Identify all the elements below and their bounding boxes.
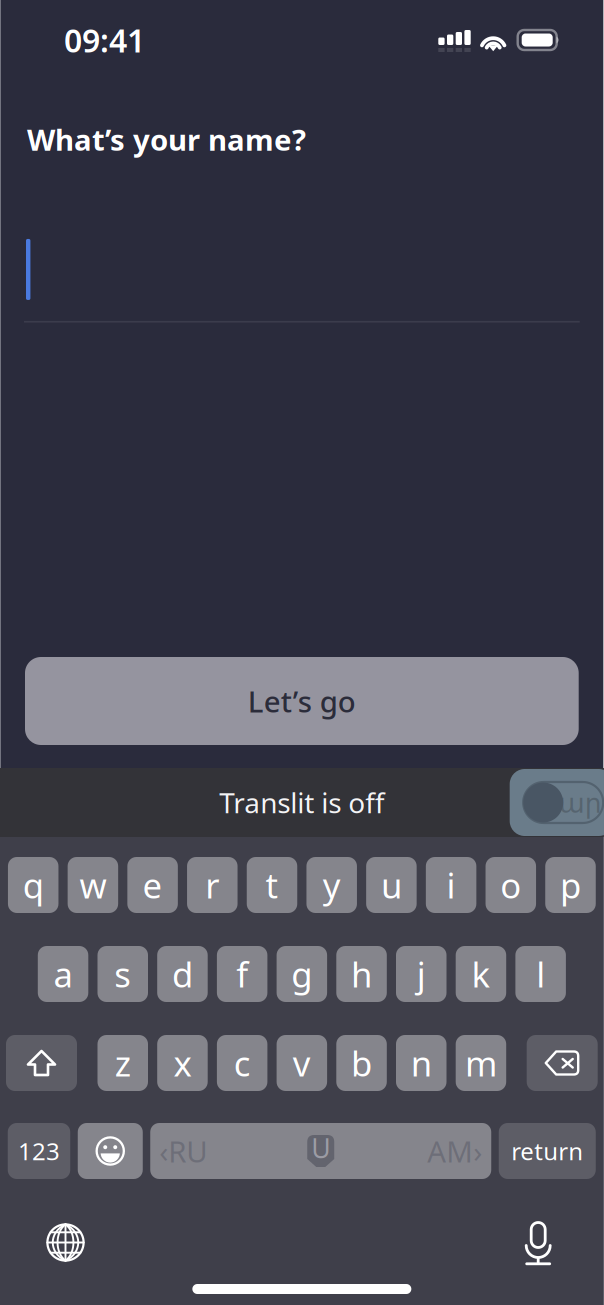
button[interactable]: j bbox=[396, 946, 446, 1002]
staticText: e bbox=[143, 862, 163, 908]
button[interactable]: r bbox=[187, 857, 238, 913]
staticText: l bbox=[536, 951, 545, 997]
button[interactable]: Let’s go bbox=[25, 657, 579, 745]
staticText: o bbox=[500, 862, 521, 908]
button[interactable]: l bbox=[515, 946, 566, 1002]
button[interactable]: a bbox=[38, 946, 88, 1002]
button[interactable]: Shift bbox=[6, 1035, 77, 1091]
button[interactable]: Emoji bbox=[78, 1123, 143, 1179]
button[interactable]: s bbox=[97, 946, 148, 1002]
button[interactable]: 123 bbox=[8, 1123, 70, 1179]
button[interactable]: y bbox=[306, 857, 357, 913]
staticText: return bbox=[511, 1135, 583, 1167]
staticText: AM› bbox=[427, 1131, 482, 1170]
button[interactable]: p bbox=[545, 857, 596, 913]
button[interactable]: Space bbox=[150, 1123, 491, 1179]
staticText: t bbox=[265, 862, 278, 908]
staticText: n bbox=[411, 1040, 432, 1086]
button[interactable]: b bbox=[336, 1035, 387, 1091]
staticText: g bbox=[291, 951, 312, 997]
button[interactable]: x bbox=[157, 1035, 208, 1091]
staticText: ար bbox=[559, 788, 602, 819]
staticText: m bbox=[465, 1040, 497, 1086]
button[interactable]: q bbox=[8, 857, 58, 913]
staticText: Translit is off bbox=[219, 784, 384, 821]
button[interactable]: Dictation bbox=[512, 1219, 565, 1265]
button[interactable]: Next keyboard bbox=[36, 1213, 95, 1272]
button[interactable]: return bbox=[499, 1123, 596, 1179]
button[interactable]: Translit toggle bbox=[500, 769, 604, 836]
staticText: i bbox=[447, 862, 456, 908]
staticText: j bbox=[417, 951, 426, 997]
button[interactable]: k bbox=[456, 946, 506, 1002]
staticText: x bbox=[173, 1040, 191, 1086]
staticText: s bbox=[114, 951, 131, 997]
staticText: What’s your name? bbox=[27, 120, 306, 159]
staticText: w bbox=[79, 862, 106, 908]
staticText: f bbox=[236, 951, 248, 997]
button[interactable]: e bbox=[127, 857, 178, 913]
staticText: Let’s go bbox=[248, 681, 356, 720]
button[interactable]: n bbox=[396, 1035, 446, 1091]
staticText: a bbox=[54, 951, 73, 997]
staticText: v bbox=[293, 1040, 311, 1086]
staticText: k bbox=[471, 951, 490, 997]
button[interactable]: f bbox=[217, 946, 267, 1002]
button[interactable]: w bbox=[68, 857, 118, 913]
staticText: d bbox=[172, 951, 193, 997]
staticText: 123 bbox=[18, 1135, 60, 1167]
staticText: U bbox=[311, 1130, 330, 1166]
staticText: b bbox=[351, 1040, 372, 1086]
button[interactable]: d bbox=[157, 946, 208, 1002]
staticText: p bbox=[560, 862, 581, 908]
staticText: c bbox=[234, 1040, 251, 1086]
button[interactable]: h bbox=[336, 946, 387, 1002]
staticText: y bbox=[323, 862, 341, 908]
button[interactable]: t bbox=[247, 857, 297, 913]
button[interactable]: z bbox=[97, 1035, 148, 1091]
button[interactable]: Delete bbox=[527, 1035, 598, 1091]
button[interactable]: c bbox=[217, 1035, 267, 1091]
staticText: r bbox=[205, 862, 219, 908]
button[interactable]: v bbox=[277, 1035, 327, 1091]
staticText: q bbox=[23, 862, 44, 908]
staticText: h bbox=[351, 951, 372, 997]
staticText: ‹RU bbox=[159, 1131, 207, 1170]
button[interactable]: o bbox=[486, 857, 536, 913]
staticText: 09:41 bbox=[64, 19, 145, 61]
button[interactable]: m bbox=[456, 1035, 506, 1091]
staticText: u bbox=[381, 862, 402, 908]
button[interactable]: g bbox=[277, 946, 327, 1002]
staticText: z bbox=[115, 1040, 131, 1086]
button[interactable]: u bbox=[366, 857, 417, 913]
button[interactable]: i bbox=[426, 857, 476, 913]
